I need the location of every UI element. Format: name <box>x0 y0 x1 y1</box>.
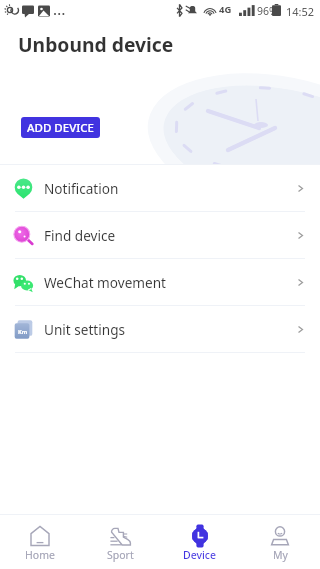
button[interactable]: Notification <box>0 165 320 212</box>
staticText: Device <box>183 548 217 562</box>
staticText: ADD DEVICE <box>27 120 94 136</box>
button[interactable]: Find device <box>0 212 320 259</box>
button[interactable]: Home <box>0 518 80 566</box>
button[interactable]: Device <box>160 518 240 566</box>
staticText: Unbound device <box>18 31 174 57</box>
staticText: Home <box>25 548 55 562</box>
button[interactable]: WeChat movement <box>0 259 320 306</box>
staticText: Find device <box>44 226 116 245</box>
staticText: 4G <box>219 3 232 16</box>
staticText: 96% <box>257 4 278 18</box>
staticText: Notification <box>44 179 119 198</box>
staticText: My <box>273 548 288 562</box>
staticText: WeChat movement <box>44 273 167 292</box>
button[interactable]: My <box>240 518 320 566</box>
button[interactable]: Sport <box>80 518 160 566</box>
button[interactable]: ADD DEVICE <box>21 117 100 138</box>
staticText: Sport <box>107 548 134 562</box>
staticText: 14:52 <box>286 4 315 19</box>
staticText: Km <box>18 328 28 336</box>
button[interactable]: Km <box>0 306 320 353</box>
staticText: Unit settings <box>44 320 126 339</box>
